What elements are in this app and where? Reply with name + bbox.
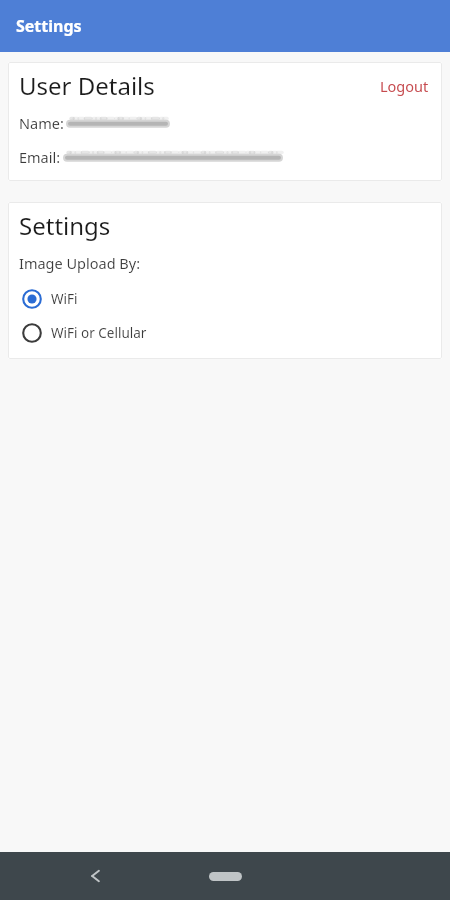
- staticText: WiFi: [51, 290, 78, 308]
- staticText: Email:: [19, 147, 61, 167]
- button[interactable]: WiFi or Cellular: [19, 320, 431, 346]
- staticText: Settings: [19, 209, 111, 242]
- staticText: Logout: [380, 76, 429, 96]
- staticText: Image Upload By:: [19, 253, 141, 273]
- button[interactable]: Home: [199, 863, 251, 889]
- staticText: Settings: [16, 15, 82, 37]
- button[interactable]: Back: [78, 859, 112, 893]
- button[interactable]: Logout: [378, 74, 431, 98]
- staticText: User Details: [19, 69, 155, 102]
- staticText: WiFi or Cellular: [51, 324, 147, 342]
- button[interactable]: WiFi: [19, 286, 431, 312]
- staticText: Name:: [19, 113, 64, 133]
